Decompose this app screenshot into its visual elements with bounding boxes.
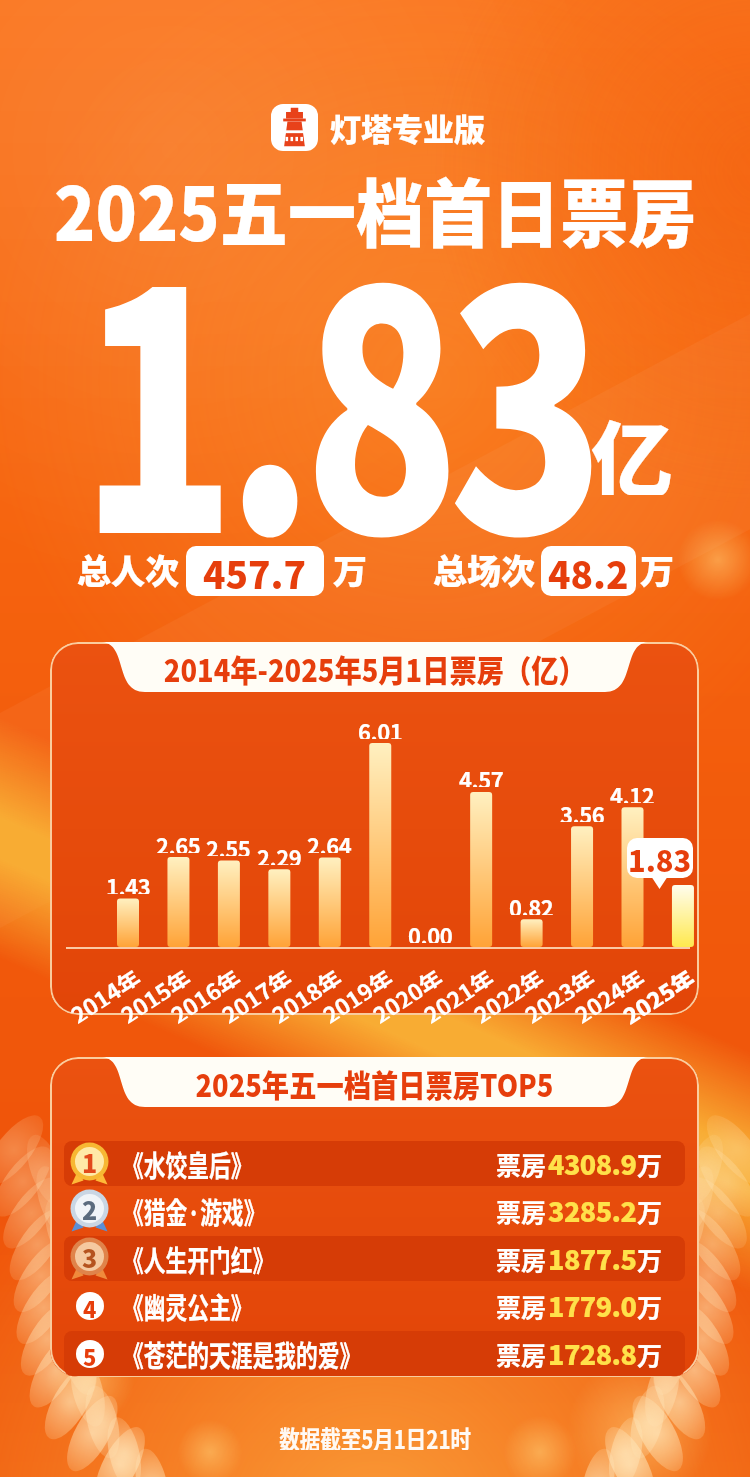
staticText: 2020年 — [365, 960, 445, 1024]
staticText: 2.29 — [257, 841, 302, 865]
button[interactable]: 5 — [50, 1331, 699, 1376]
staticText: 2022年 — [466, 960, 546, 1024]
staticText: 2 — [82, 1191, 98, 1227]
staticText: 2023年 — [517, 960, 597, 1024]
staticText: 4.12 — [610, 779, 655, 803]
button[interactable]: 48.2 — [541, 546, 636, 596]
staticText: 3285.2 — [548, 1191, 637, 1230]
staticText: 4.57 — [459, 763, 504, 787]
staticText: 2025五一档首日票房 — [54, 155, 697, 259]
staticText: 2.55 — [206, 832, 251, 856]
staticText: 5 — [83, 1340, 97, 1368]
staticText: 0.00 — [408, 919, 453, 943]
staticText: 1 — [82, 1144, 98, 1180]
staticText: 《猎金·游戏》 — [122, 1190, 266, 1232]
staticText: 票房 — [496, 1241, 547, 1277]
staticText: 3.56 — [560, 798, 605, 822]
staticText: 票房 — [496, 1193, 547, 1229]
button[interactable]: 3 — [50, 1236, 699, 1281]
staticText: 总人次 — [77, 545, 179, 594]
button[interactable]: 1 — [50, 1141, 699, 1186]
staticText: 1728.8 — [548, 1334, 637, 1373]
button[interactable]: 2 — [50, 1188, 699, 1233]
staticText: 1.43 — [106, 870, 151, 894]
staticText: 2015年 — [113, 960, 193, 1024]
staticText: 2.65 — [156, 829, 201, 853]
staticText: 万 — [637, 1193, 663, 1229]
staticText: 0.82 — [509, 891, 554, 915]
staticText: 万 — [637, 1288, 663, 1324]
staticText: 票房 — [496, 1288, 547, 1324]
staticText: 2025年五一档首日票房TOP5 — [195, 1061, 554, 1101]
staticText: 2014年-2025年5月1日票房（亿） — [164, 646, 586, 686]
staticText: 2019年 — [315, 960, 395, 1024]
staticText: 1779.0 — [548, 1286, 637, 1325]
staticText: 2024年 — [567, 960, 647, 1024]
staticText: 6.01 — [358, 715, 403, 739]
staticText: 2.64 — [307, 829, 352, 853]
staticText: 总场次 — [433, 545, 535, 594]
staticText: 1877.5 — [548, 1239, 637, 1278]
staticText: 《人生开门红》 — [122, 1238, 275, 1280]
staticText: 3 — [82, 1239, 98, 1275]
staticText: 灯塔专业版 — [330, 105, 485, 150]
staticText: 2025年 — [616, 960, 697, 1025]
staticText: 4 — [83, 1292, 97, 1320]
staticText: 数据截至5月1日21时 — [279, 1420, 472, 1450]
staticText: 48.2 — [548, 546, 629, 596]
staticText: 4308.9 — [548, 1144, 637, 1183]
staticText: 票房 — [496, 1336, 547, 1372]
staticText: 457.7 — [203, 546, 307, 596]
staticText: 万 — [637, 1336, 663, 1372]
staticText: 2014年 — [63, 960, 143, 1024]
staticText: 2016年 — [163, 960, 243, 1024]
staticText: 2017年 — [214, 960, 294, 1024]
staticText: 2021年 — [416, 960, 496, 1024]
staticText: 亿 — [591, 395, 674, 495]
button[interactable] — [271, 104, 318, 151]
button[interactable]: 1.83 — [627, 838, 693, 878]
button[interactable]: 4 — [50, 1283, 699, 1328]
button[interactable] — [50, 642, 699, 1015]
staticText: 1.83 — [628, 838, 692, 878]
staticText: 1.83 — [80, 150, 594, 628]
staticText: 票房 — [496, 1146, 547, 1182]
staticText: 《幽灵公主》 — [122, 1285, 253, 1327]
button[interactable]: 457.7 — [186, 546, 324, 596]
staticText: 《苍茫的天涯是我的爱》 — [122, 1333, 362, 1375]
staticText: 2018年 — [264, 960, 344, 1024]
staticText: 《水饺皇后》 — [122, 1143, 253, 1185]
staticText: 万 — [640, 545, 674, 594]
staticText: 万 — [637, 1241, 663, 1277]
staticText: 万 — [637, 1146, 663, 1182]
staticText: 万 — [333, 545, 367, 594]
